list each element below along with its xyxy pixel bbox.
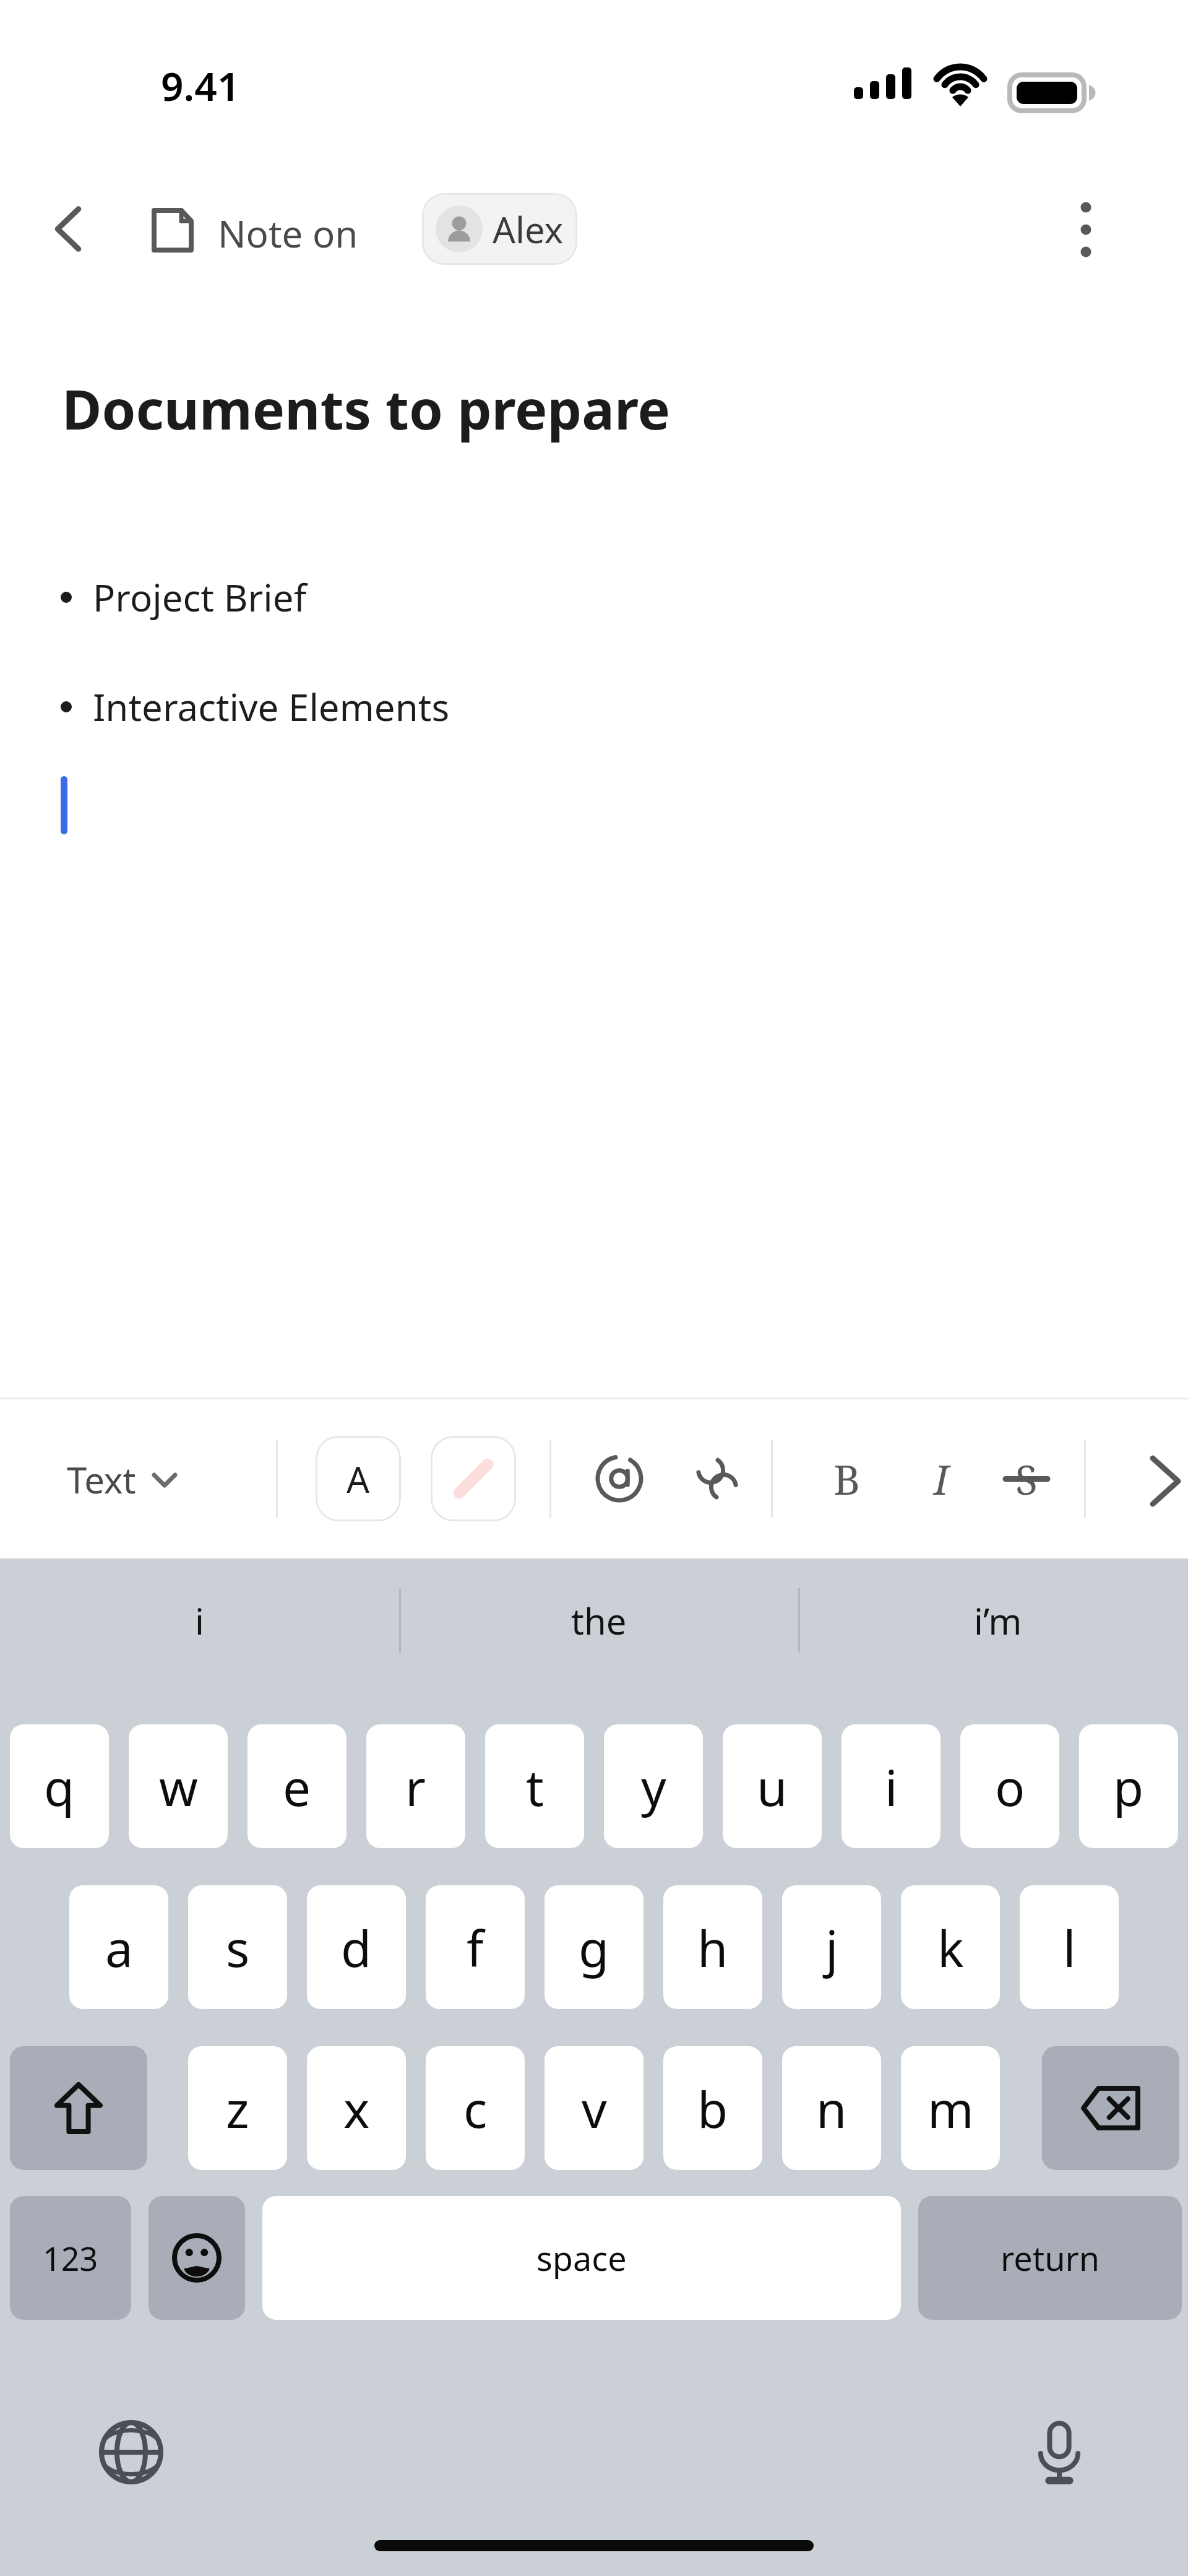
staticText: Note on [218, 208, 358, 259]
staticText: B [833, 1451, 861, 1506]
button[interactable] [431, 1436, 516, 1521]
button[interactable]: e [247, 1724, 346, 1848]
staticText: t [526, 1753, 544, 1820]
button[interactable]: y [604, 1724, 703, 1848]
staticText: u [757, 1753, 788, 1820]
staticText: n [816, 2075, 847, 2142]
button[interactable]: g [544, 1885, 643, 2009]
button[interactable]: t [485, 1724, 584, 1848]
staticText: Alex [493, 205, 564, 254]
staticText: r [405, 1753, 426, 1820]
staticText: l [1063, 1914, 1076, 1981]
button[interactable]: Italic [898, 1436, 984, 1521]
staticText: I [934, 1451, 949, 1506]
staticText: s [226, 1914, 250, 1981]
button[interactable]: Project Brief [0, 566, 1188, 628]
staticText: b [697, 2075, 728, 2142]
staticText: j [825, 1914, 838, 1981]
staticText: Interactive Elements [93, 681, 450, 732]
button[interactable]: space [262, 2196, 901, 2320]
button[interactable]: Strikethrough [984, 1436, 1069, 1521]
button[interactable]: a [69, 1885, 168, 2009]
staticText: i [195, 1596, 204, 1645]
staticText: Project Brief [93, 572, 307, 623]
staticText: o [995, 1753, 1025, 1820]
button[interactable]: u [723, 1724, 822, 1848]
button[interactable]: m [901, 2046, 1000, 2170]
button[interactable]: p [1079, 1724, 1178, 1848]
staticText: 9.41 [161, 59, 240, 113]
button[interactable]: w [129, 1724, 228, 1848]
staticText: m [928, 2075, 974, 2142]
button[interactable]: Dictate [1009, 2401, 1110, 2503]
button[interactable]: the [399, 1558, 798, 1682]
staticText: w [159, 1753, 198, 1820]
button[interactable]: Interactive Elements [0, 676, 1188, 738]
button[interactable]: r [366, 1724, 465, 1848]
staticText: Text [67, 1455, 136, 1504]
button[interactable]: k [901, 1885, 1000, 2009]
button[interactable]: i [0, 1558, 399, 1682]
staticText: Documents to prepare [62, 371, 671, 446]
button[interactable]: n [782, 2046, 881, 2170]
staticText: y [641, 1753, 666, 1820]
button[interactable]: Mention [577, 1436, 662, 1521]
button[interactable]: Return [918, 2196, 1182, 2320]
button[interactable]: c [426, 2046, 525, 2170]
staticText: z [226, 2075, 249, 2142]
button[interactable]: s [188, 1885, 287, 2009]
button[interactable]: i [841, 1724, 940, 1848]
button[interactable]: i’m [798, 1558, 1188, 1682]
staticText: the [571, 1596, 627, 1645]
button[interactable]: Text [67, 1448, 177, 1510]
button[interactable]: x [307, 2046, 406, 2170]
button[interactable]: Alex [422, 193, 577, 265]
staticText: g [579, 1914, 609, 1981]
staticText: a [105, 1914, 133, 1981]
staticText: x [343, 2075, 370, 2142]
button[interactable]: b [663, 2046, 762, 2170]
staticText: c [463, 2075, 488, 2142]
button[interactable]: z [188, 2046, 287, 2170]
button[interactable]: j [782, 1885, 881, 2009]
button[interactable]: Numbers [10, 2196, 131, 2320]
button[interactable]: f [426, 1885, 525, 2009]
staticText: 123 [43, 2236, 98, 2280]
button[interactable]: Bold [804, 1436, 890, 1521]
button[interactable]: Link [674, 1436, 760, 1521]
button[interactable]: v [544, 2046, 643, 2170]
button[interactable]: h [663, 1885, 762, 2009]
staticText: d [341, 1914, 372, 1981]
button[interactable]: Change keyboard [80, 2401, 182, 2503]
staticText: e [283, 1753, 311, 1820]
button[interactable]: Back [25, 186, 111, 272]
button[interactable]: l [1020, 1885, 1119, 2009]
button[interactable]: Shift [10, 2046, 147, 2170]
staticText: k [937, 1914, 964, 1981]
staticText: i [885, 1753, 898, 1820]
button[interactable]: o [960, 1724, 1059, 1848]
staticText: h [697, 1914, 728, 1981]
button[interactable]: More options [1047, 191, 1125, 269]
button[interactable]: q [10, 1724, 109, 1848]
staticText: f [467, 1914, 484, 1981]
button[interactable]: Backspace [1042, 2046, 1179, 2170]
button[interactable]: A [316, 1436, 401, 1521]
staticText: v [582, 2075, 607, 2142]
button[interactable]: Emoji [148, 2196, 245, 2320]
staticText: i’m [974, 1596, 1022, 1645]
staticText: p [1113, 1753, 1144, 1820]
button[interactable]: d [307, 1885, 406, 2009]
staticText: space [536, 2235, 627, 2281]
staticText: A [346, 1454, 370, 1503]
staticText: S [1015, 1451, 1038, 1506]
staticText: q [44, 1753, 75, 1820]
staticText: return [1001, 2235, 1100, 2281]
